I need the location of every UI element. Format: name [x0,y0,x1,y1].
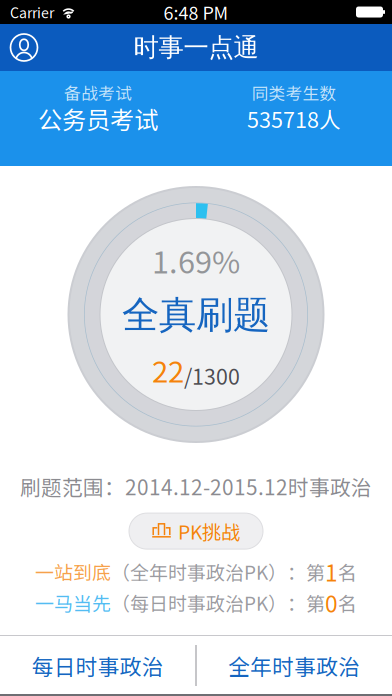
staticText: 名 [338,589,357,616]
staticText: 每日时事政治 [32,650,164,681]
staticText: Carrier [10,2,54,22]
staticText: 备战考试 [64,80,132,105]
staticText: 1.69% [152,238,240,282]
button[interactable]: Account [0,24,48,71]
staticText: /1300 [184,360,240,391]
button[interactable]: PK挑战 [129,513,263,549]
staticText: 名 [338,558,357,585]
staticText: PK挑战 [178,517,240,545]
staticText: （全年时事政治PK）：第 [111,558,325,585]
staticText: 535718人 [247,103,341,134]
staticText: 公务员考试 [38,101,158,136]
staticText: 22 [152,348,184,391]
button[interactable]: 每日时事政治 [0,635,195,696]
staticText: 6:48 PM [163,0,228,25]
staticText: 全真刷题 [122,291,270,338]
staticText: 一站到底 [35,558,111,585]
staticText: 时事一点通 [133,31,258,63]
staticText: 一马当先 [35,589,111,616]
staticText: 1 [325,555,338,588]
staticText: （每日时事政治PK）：第 [111,589,325,616]
staticText: 全年时事政治 [228,650,360,681]
button[interactable]: 全年时事政治 [196,635,392,696]
staticText: 刷题范围：2014.12-2015.12时事政治 [20,471,372,501]
staticText: 0 [325,586,338,619]
staticText: 同类考生数 [251,80,336,105]
